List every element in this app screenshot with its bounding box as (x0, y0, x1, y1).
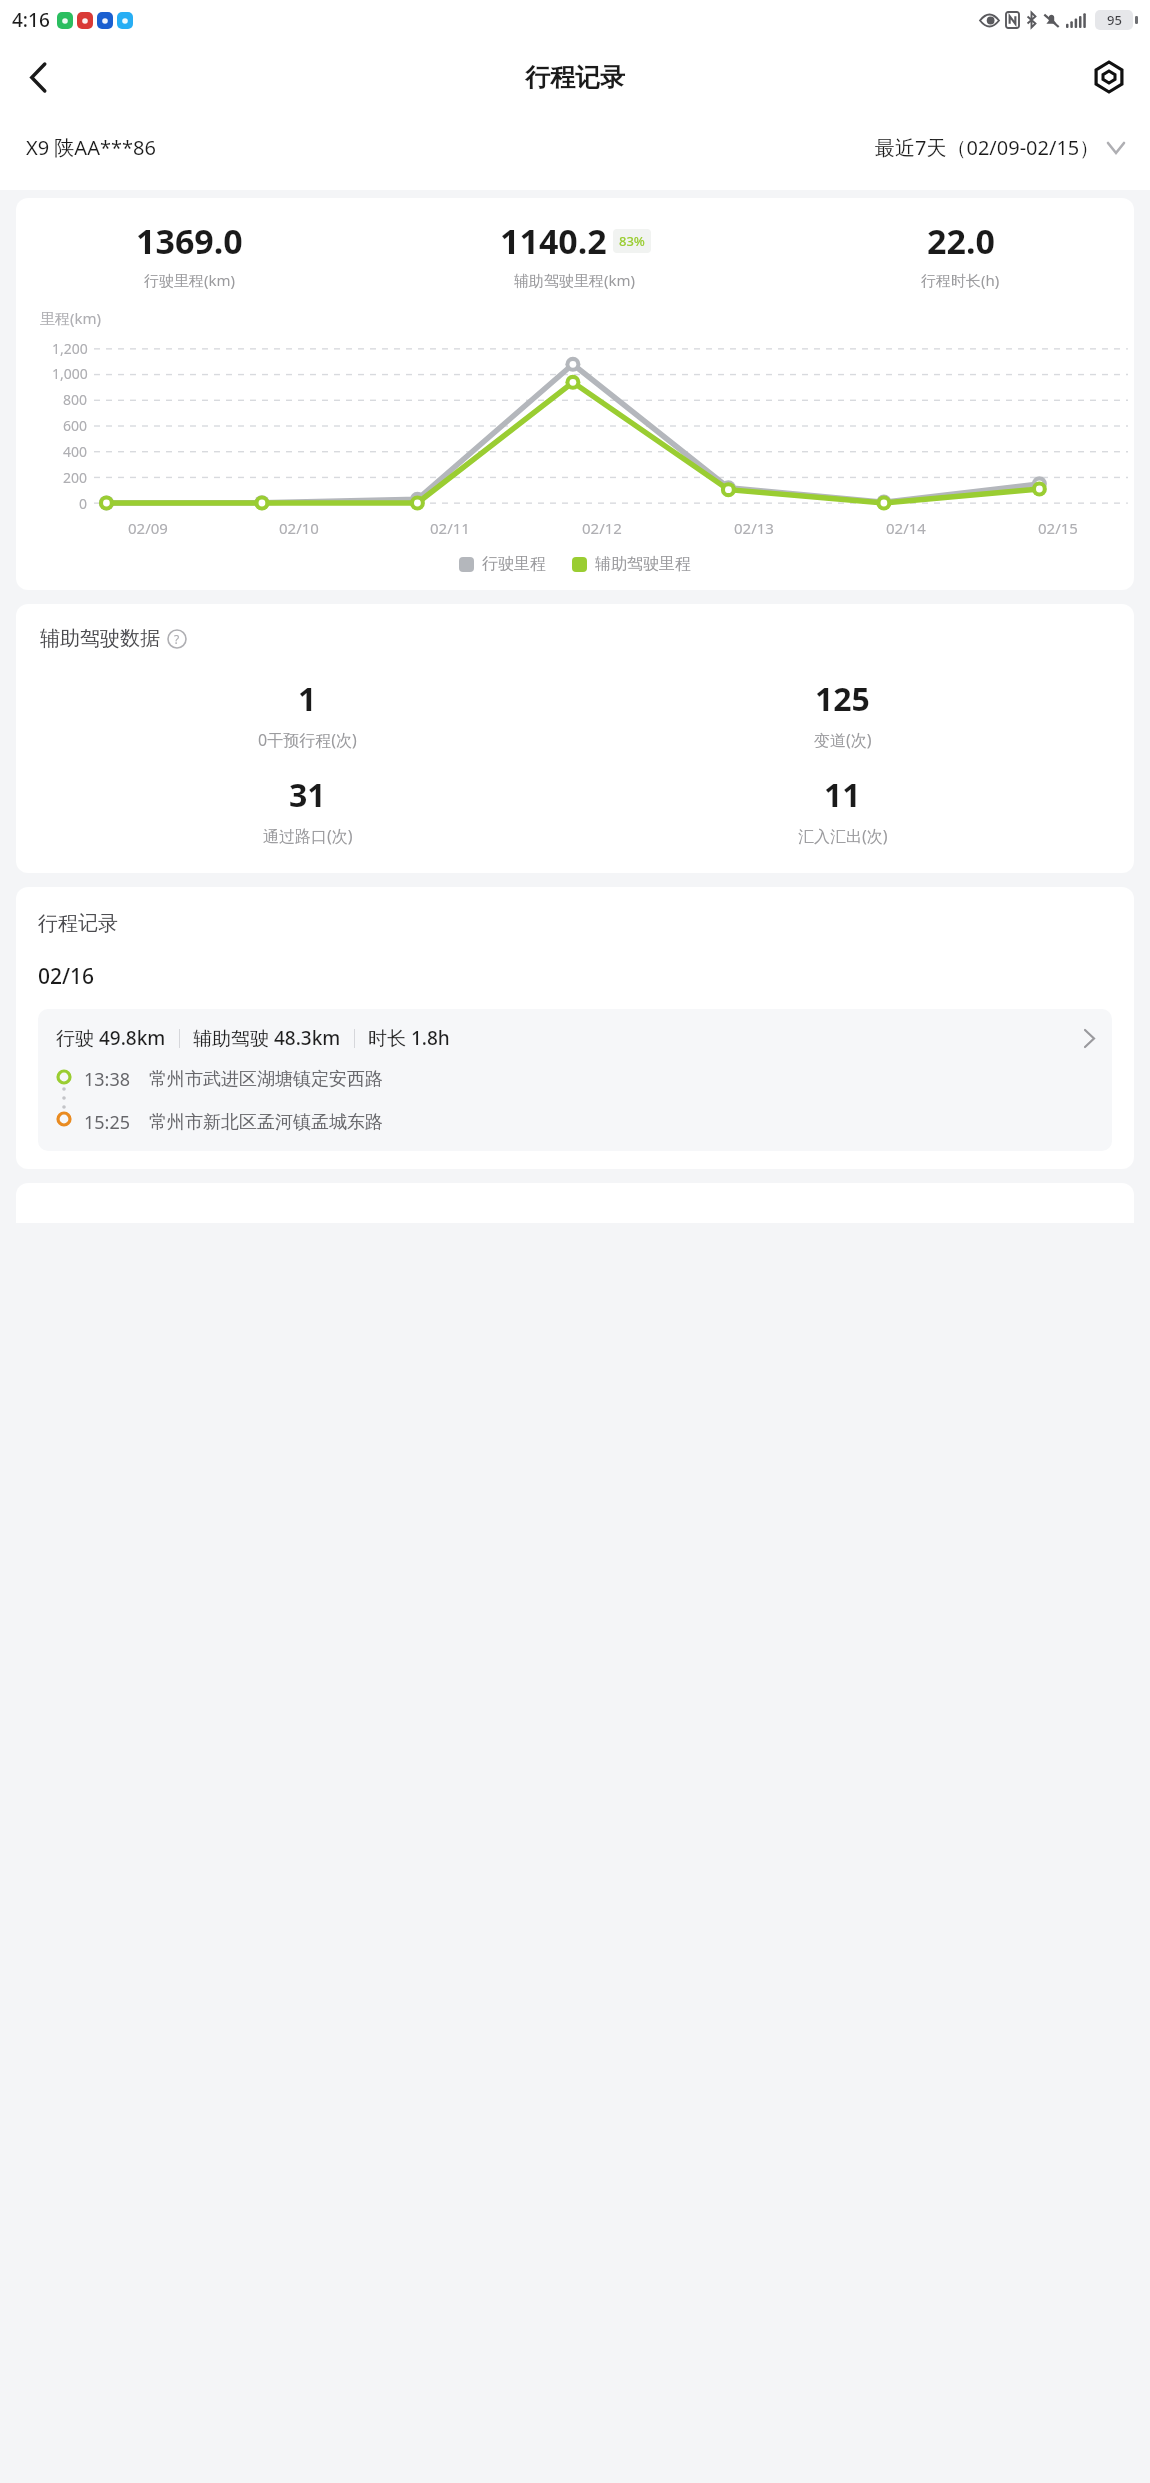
staticText: 4:16 (12, 7, 50, 33)
staticText: 02/11 (430, 518, 470, 538)
button[interactable]: Back (10, 49, 66, 105)
staticText: 400 (63, 442, 88, 461)
button[interactable]: 1140.2 (363, 218, 787, 290)
staticText: 辅助驾驶里程(km) (514, 270, 636, 290)
staticText: 83% (619, 232, 645, 250)
staticText: 行程记录 (38, 911, 118, 936)
staticText: 02/14 (886, 518, 926, 538)
staticText: X9 陕AA***86 (26, 134, 156, 161)
staticText: 125 (815, 677, 870, 721)
button[interactable]: 31 (40, 773, 575, 847)
staticText: 汇入汇出(次) (798, 825, 888, 847)
staticText: 1,000 (52, 364, 88, 383)
staticText: 里程(km) (40, 308, 102, 328)
staticText: 通过路口(次) (263, 825, 353, 847)
staticText: ? (174, 631, 180, 647)
staticText: 常州市新北区孟河镇孟城东路 (149, 1111, 383, 1134)
staticText: 时长 1.8h (368, 1025, 450, 1051)
button[interactable]: 行驶 49.8km (38, 1009, 1112, 1151)
staticText: 95 (1107, 11, 1122, 29)
staticText: 02/13 (734, 518, 774, 538)
staticText: 600 (63, 416, 88, 435)
staticText: 13:38 (84, 1067, 131, 1092)
staticText: 行程时长(h) (921, 270, 1000, 290)
button[interactable]: X9 陕AA***86 (26, 134, 156, 161)
staticText: 0干预行程(次) (258, 729, 357, 751)
staticText: 0 (79, 494, 88, 513)
staticText: 行程记录 (525, 62, 625, 93)
button[interactable]: 1 (40, 677, 575, 751)
staticText: 行驶里程(km) (144, 270, 236, 290)
staticText: 15:25 (84, 1110, 131, 1135)
staticText: 02/15 (1038, 518, 1078, 538)
staticText: 02/10 (279, 518, 319, 538)
staticText: 11 (824, 773, 861, 817)
staticText: 辅助驾驶数据 (40, 626, 160, 651)
button[interactable]: 1369.0 (16, 218, 363, 290)
button[interactable]: 22.0 (787, 218, 1134, 290)
button[interactable]: Help (166, 628, 188, 650)
staticText: 800 (63, 390, 88, 409)
staticText: 31 (289, 773, 326, 817)
staticText: 常州市武进区湖塘镇定安西路 (149, 1068, 383, 1091)
staticText: 变道(次) (814, 729, 872, 751)
staticText: 22.0 (927, 218, 995, 264)
button[interactable]: 125 (575, 677, 1110, 751)
staticText: 行驶里程 (482, 554, 546, 574)
button[interactable]: 最近7天（02/09-02/15） (875, 134, 1124, 161)
staticText: 1,200 (52, 339, 88, 358)
staticText: 02/16 (38, 962, 95, 991)
staticText: 最近7天（02/09-02/15） (875, 134, 1100, 161)
staticText: 行驶 49.8km (56, 1025, 166, 1051)
staticText: 02/12 (582, 518, 622, 538)
staticText: 1140.2 (500, 218, 607, 264)
staticText: 1 (298, 677, 317, 721)
staticText: 02/09 (128, 518, 168, 538)
button[interactable]: 11 (575, 773, 1110, 847)
staticText: 200 (63, 468, 88, 487)
staticText: 辅助驾驶里程 (595, 554, 691, 574)
staticText: 1369.0 (136, 218, 243, 264)
button[interactable]: Settings (1082, 50, 1136, 104)
staticText: 辅助驾驶 48.3km (193, 1025, 341, 1051)
